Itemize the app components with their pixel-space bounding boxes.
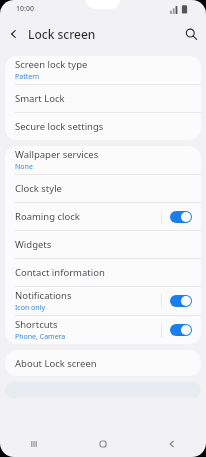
staticText: Widgets <box>15 238 52 251</box>
button[interactable]: Home <box>68 431 137 457</box>
staticText: Wallpaper services <box>15 148 99 161</box>
button[interactable]: Toggle on <box>170 211 192 223</box>
button[interactable]: Toggle on <box>170 295 192 307</box>
staticText: Contact information <box>15 266 105 279</box>
button[interactable]: Clock style <box>5 175 201 202</box>
staticText: Screen lock type <box>15 58 88 71</box>
button[interactable]: Screen lock type <box>5 56 201 84</box>
button[interactable]: Toggle on <box>170 324 192 336</box>
staticText: Roaming clock <box>15 210 80 223</box>
button[interactable]: Secure lock settings <box>5 113 201 140</box>
button[interactable]: Back <box>137 431 206 457</box>
button[interactable]: Notifications <box>5 287 201 315</box>
staticText: Notifications <box>15 289 72 302</box>
staticText: Clock style <box>15 182 62 195</box>
staticText: About Lock screen <box>15 357 97 370</box>
staticText: Lock screen <box>28 26 96 42</box>
button[interactable]: Widgets <box>5 231 201 258</box>
staticText: Pattern <box>15 72 40 82</box>
button[interactable]: Shortcuts <box>5 316 201 344</box>
button[interactable]: Back <box>0 20 28 48</box>
button[interactable]: About Lock screen <box>5 350 201 376</box>
button[interactable]: Search <box>176 19 206 49</box>
button[interactable]: Wallpaper services <box>5 146 201 174</box>
staticText: Secure lock settings <box>15 120 104 133</box>
button[interactable]: Contact information <box>5 259 201 286</box>
staticText: Smart Lock <box>15 92 65 105</box>
button[interactable]: Smart Lock <box>5 85 201 112</box>
staticText: Phone, Camera <box>15 332 66 342</box>
button[interactable]: Roaming clock <box>5 203 201 230</box>
button[interactable]: Recent apps <box>0 431 68 457</box>
staticText: Icon only <box>15 303 46 313</box>
staticText: 10:00 <box>16 4 34 14</box>
staticText: Shortcuts <box>15 318 58 331</box>
staticText: None <box>15 162 33 172</box>
